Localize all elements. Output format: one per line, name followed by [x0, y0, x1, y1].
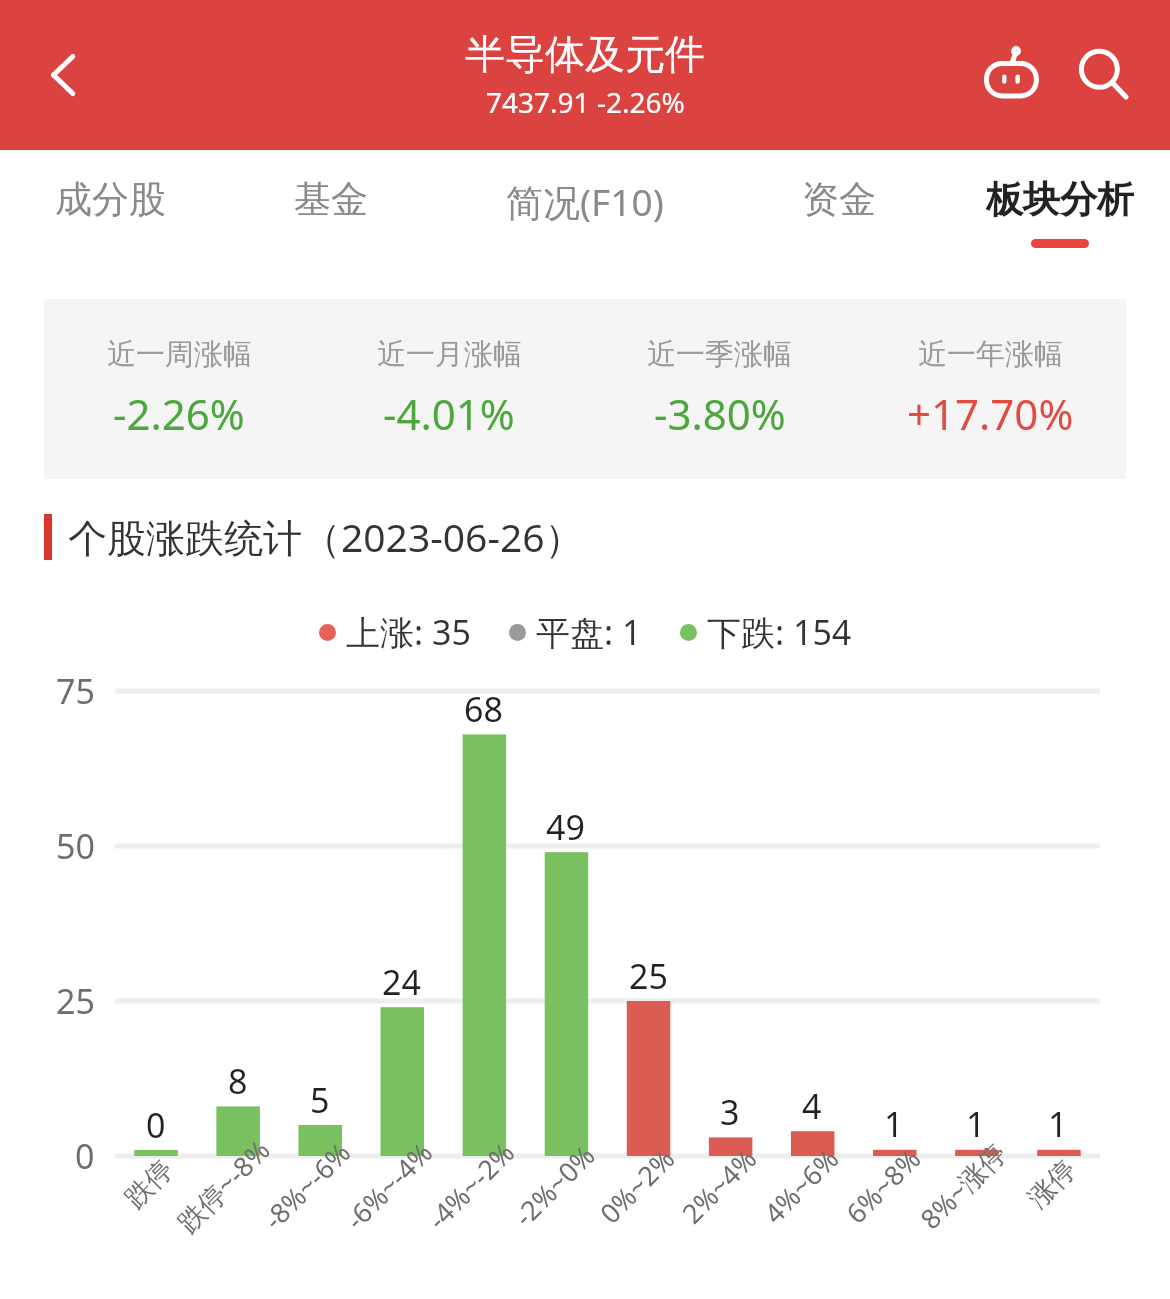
button[interactable]: AI assistant — [966, 29, 1058, 121]
staticText: 近一周涨幅 — [107, 336, 252, 373]
staticText: +17.70% — [907, 385, 1074, 442]
staticText: -3.80% — [654, 385, 786, 442]
staticText: -8%~-6% — [255, 1134, 358, 1237]
staticText: 2%~4% — [673, 1140, 765, 1231]
staticText: 板块分析 — [986, 176, 1134, 223]
staticText: 下跌: 154 — [707, 609, 852, 655]
staticText: 25 — [629, 953, 668, 999]
staticText: 24 — [382, 959, 421, 1005]
staticText: 1 — [1048, 1101, 1068, 1147]
staticText: 基金 — [294, 176, 368, 223]
button[interactable]: 资金 — [728, 150, 949, 285]
staticText: 4 — [802, 1083, 822, 1129]
staticText: 8 — [228, 1058, 248, 1104]
staticText: 7437.91 -2.26% — [486, 83, 685, 121]
staticText: 68 — [464, 686, 503, 732]
staticText: -2.26% — [113, 385, 245, 442]
staticText: 平盘: 1 — [536, 609, 642, 655]
staticText: 近一年涨幅 — [918, 336, 1063, 373]
staticText: 个股涨跌统计（2023-06-26） — [68, 510, 584, 563]
staticText: 资金 — [802, 176, 876, 223]
staticText: 0 — [75, 1133, 95, 1179]
staticText: 跌停 — [118, 1153, 180, 1215]
staticText: 跌停~-8% — [169, 1131, 278, 1240]
staticText: 1 — [966, 1101, 986, 1147]
staticText: -2%~0% — [506, 1137, 602, 1234]
staticText: -4.01% — [383, 385, 515, 442]
button[interactable]: 板块分析 — [949, 150, 1170, 285]
staticText: 近一季涨幅 — [647, 336, 792, 373]
staticText: 4%~6% — [755, 1140, 847, 1231]
staticText: 成分股 — [55, 176, 166, 223]
staticText: 3 — [720, 1089, 740, 1135]
button[interactable]: 简况(F10) — [441, 150, 728, 285]
staticText: 8%~涨停 — [912, 1134, 1014, 1237]
staticText: 1 — [884, 1101, 904, 1147]
staticText: 25 — [56, 978, 95, 1024]
staticText: 上涨: 35 — [346, 609, 471, 655]
button[interactable]: Search — [1058, 29, 1150, 121]
staticText: 49 — [546, 804, 585, 850]
button[interactable]: Back — [18, 29, 110, 121]
staticText: 50 — [56, 823, 95, 869]
staticText: 0%~2% — [591, 1140, 683, 1231]
staticText: 0 — [146, 1102, 166, 1148]
staticText: 5 — [310, 1077, 330, 1123]
staticText: 6%~8% — [837, 1140, 929, 1231]
staticText: 简况(F10) — [506, 176, 664, 227]
staticText: 涨停 — [1021, 1153, 1083, 1215]
staticText: -6%~-4% — [337, 1134, 440, 1237]
staticText: -4%~-2% — [419, 1134, 522, 1237]
staticText: 75 — [56, 668, 95, 714]
staticText: 近一月涨幅 — [377, 336, 522, 373]
button[interactable]: 成分股 — [0, 150, 220, 285]
button[interactable]: 基金 — [220, 150, 441, 285]
staticText: 半导体及元件 — [465, 29, 705, 79]
